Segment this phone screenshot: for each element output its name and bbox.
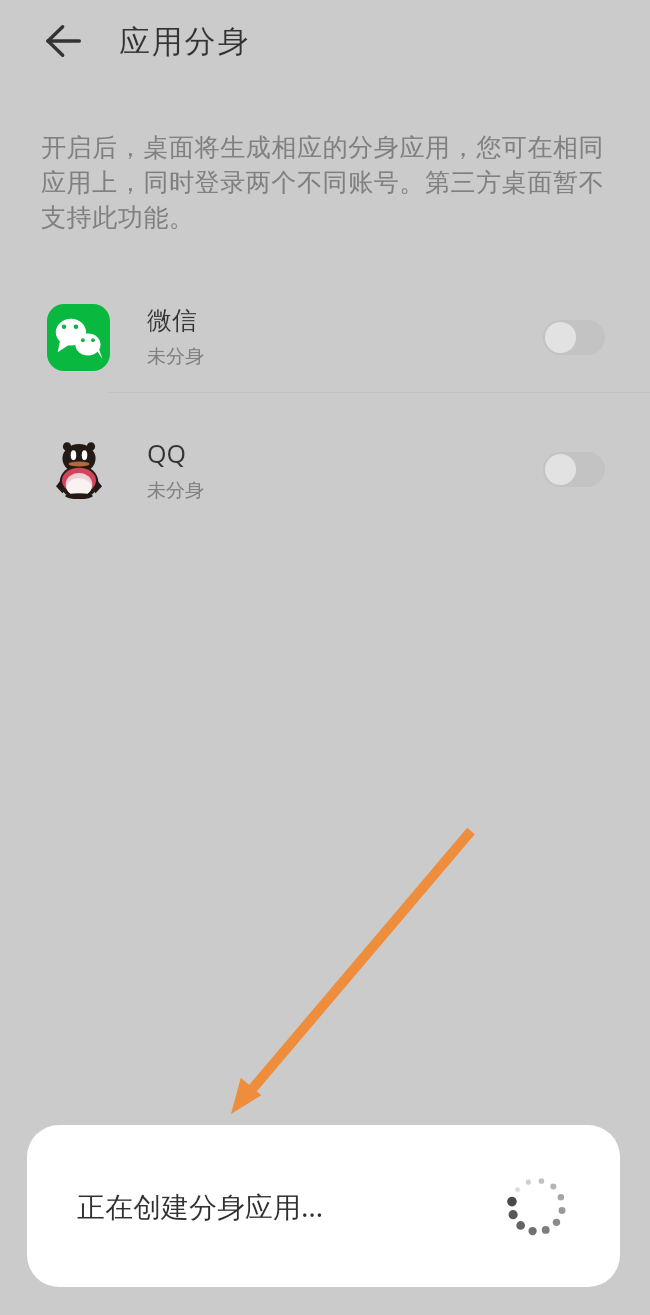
staticText: 开启后，桌面将生成相应的分身应用，您可在相同应用上，同时登录两个不同账号。第三方… <box>41 132 619 234</box>
staticText: 应用分身 <box>119 22 251 61</box>
staticText: 正在创建分身应用… <box>77 1187 324 1225</box>
staticText: 未分身 <box>147 345 204 369</box>
button[interactable]: QQ <box>0 414 650 524</box>
button[interactable]: 微信 <box>0 282 650 392</box>
button[interactable]: 正在创建分身应用… <box>27 1125 620 1287</box>
button[interactable]: Toggle 微信 <box>543 320 605 355</box>
button[interactable]: Toggle QQ <box>543 452 605 487</box>
staticText: QQ <box>147 436 187 470</box>
staticText: 未分身 <box>147 479 204 503</box>
button[interactable]: Back <box>37 15 89 67</box>
staticText: 微信 <box>147 305 197 336</box>
